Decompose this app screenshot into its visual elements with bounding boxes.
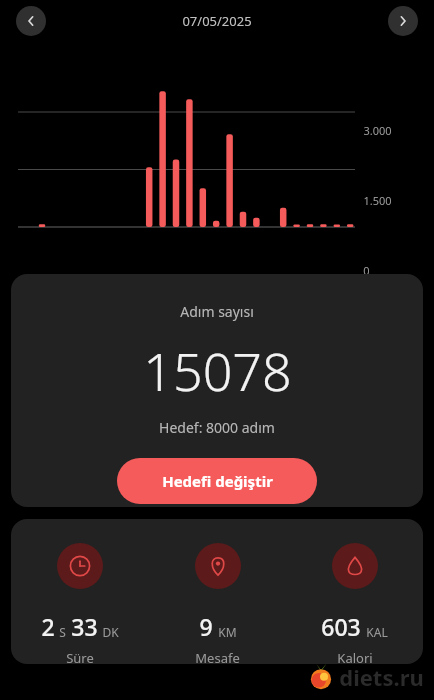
other: Mesafe bbox=[195, 543, 241, 589]
staticText: Kalori bbox=[337, 649, 373, 664]
staticText: 0 bbox=[363, 263, 370, 278]
button[interactable]: Süre bbox=[11, 519, 149, 664]
staticText: 2 bbox=[41, 611, 55, 642]
staticText: 1.500 bbox=[363, 193, 392, 208]
staticText: 15078 bbox=[143, 335, 292, 406]
staticText: Süre bbox=[66, 649, 94, 664]
staticText: 9 bbox=[199, 611, 213, 642]
button[interactable]: Previous day bbox=[16, 6, 46, 36]
staticText: KM bbox=[218, 624, 237, 640]
button[interactable]: Hedefi değiştir bbox=[117, 458, 317, 504]
staticText: 3.000 bbox=[363, 123, 392, 138]
button[interactable]: Kalori bbox=[286, 519, 423, 664]
staticText: S bbox=[59, 624, 66, 640]
button[interactable]: Mesafe bbox=[149, 519, 286, 664]
staticText: Hedefi değiştir bbox=[162, 471, 273, 491]
other: Süre bbox=[57, 543, 103, 589]
other: Kalori bbox=[332, 543, 378, 589]
staticText: 33 bbox=[71, 611, 98, 642]
staticText: 07/05/2025 bbox=[182, 12, 252, 30]
staticText: KAL bbox=[366, 624, 388, 640]
staticText: 603 bbox=[321, 611, 361, 642]
button[interactable]: Adım sayısı bbox=[11, 274, 423, 507]
staticText: Hedef: 8000 adım bbox=[159, 418, 275, 437]
staticText: DK bbox=[102, 624, 119, 640]
staticText: Adım sayısı bbox=[180, 302, 254, 321]
button[interactable]: Next day bbox=[388, 6, 418, 36]
staticText: diets.ru bbox=[339, 662, 424, 692]
staticText: Mesafe bbox=[195, 649, 240, 664]
